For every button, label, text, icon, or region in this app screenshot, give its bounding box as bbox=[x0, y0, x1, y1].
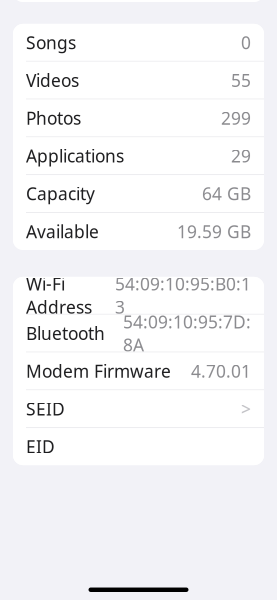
staticText: 55 bbox=[231, 69, 251, 92]
staticText: 0 bbox=[241, 31, 251, 54]
staticText: 64 GB bbox=[202, 182, 251, 205]
staticText: 4.70.01 bbox=[191, 359, 251, 382]
button[interactable]: Songs bbox=[13, 24, 264, 61]
staticText: Applications bbox=[26, 144, 124, 167]
staticText: Wi-Fi Address bbox=[26, 272, 92, 318]
staticText: 54:09:10:95:7D:8A bbox=[123, 310, 251, 356]
button[interactable]: Bluetooth bbox=[13, 315, 264, 352]
button[interactable]: Applications bbox=[13, 137, 264, 174]
button[interactable]: Wi-Fi Address bbox=[13, 277, 264, 314]
button[interactable]: Photos bbox=[13, 99, 264, 136]
button[interactable]: Available bbox=[13, 213, 264, 250]
button[interactable]: Modem Firmware bbox=[13, 352, 264, 389]
staticText: 54:09:10:95:B0:13 bbox=[115, 272, 251, 318]
staticText: Bluetooth bbox=[26, 322, 105, 345]
staticText: SEID bbox=[26, 397, 65, 420]
staticText: 19.59 GB bbox=[177, 220, 251, 243]
button[interactable]: EID bbox=[13, 428, 264, 465]
staticText: EID bbox=[26, 435, 55, 458]
staticText: Songs bbox=[26, 31, 76, 54]
staticText: > bbox=[241, 397, 251, 420]
button[interactable]: SEID bbox=[13, 390, 264, 427]
button[interactable]: Capacity bbox=[13, 175, 264, 212]
staticText: 29 bbox=[231, 144, 251, 167]
staticText: Available bbox=[26, 220, 99, 243]
button[interactable]: Videos bbox=[13, 62, 264, 99]
staticText: 299 bbox=[221, 106, 251, 129]
staticText: Capacity bbox=[26, 182, 95, 205]
staticText: Videos bbox=[26, 69, 79, 92]
staticText: Modem Firmware bbox=[26, 359, 171, 382]
staticText: Photos bbox=[26, 106, 81, 129]
